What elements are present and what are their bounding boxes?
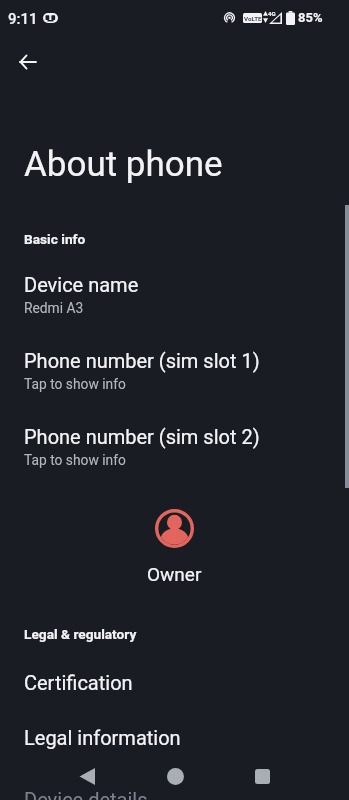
- button[interactable]: Legal information: [0, 726, 349, 749]
- button[interactable]: Phone number (sim slot 1): [0, 349, 349, 388]
- staticText: About phone: [24, 144, 223, 185]
- staticText: Device details: [24, 788, 148, 800]
- button[interactable]: Back: [6, 40, 50, 84]
- staticText: Tap to show info: [24, 376, 126, 392]
- staticText: Tap to show info: [24, 452, 126, 468]
- button[interactable]: Owner: [0, 509, 349, 585]
- staticText: 4G: [268, 10, 276, 17]
- staticText: Certification: [24, 671, 133, 694]
- staticText: 9:11: [8, 10, 38, 28]
- staticText: Phone number (sim slot 2): [24, 425, 260, 448]
- button[interactable]: Phone number (sim slot 2): [0, 425, 349, 464]
- staticText: Phone number (sim slot 1): [24, 349, 260, 372]
- staticText: VoLTE: [244, 15, 262, 22]
- button[interactable]: Recent apps: [240, 754, 284, 798]
- button[interactable]: Certification: [0, 671, 349, 694]
- staticText: Redmi A3: [24, 300, 84, 316]
- button[interactable]: Device details: [0, 788, 349, 800]
- staticText: 85%: [298, 10, 323, 25]
- staticText: Owner: [147, 563, 202, 585]
- button[interactable]: Device name: [0, 273, 349, 312]
- staticText: Device name: [24, 273, 139, 296]
- button[interactable]: Back: [65, 754, 109, 798]
- button[interactable]: Home: [153, 754, 197, 798]
- staticText: Basic info: [24, 231, 86, 247]
- staticText: Legal & regulatory: [24, 626, 137, 642]
- staticText: Legal information: [24, 726, 181, 749]
